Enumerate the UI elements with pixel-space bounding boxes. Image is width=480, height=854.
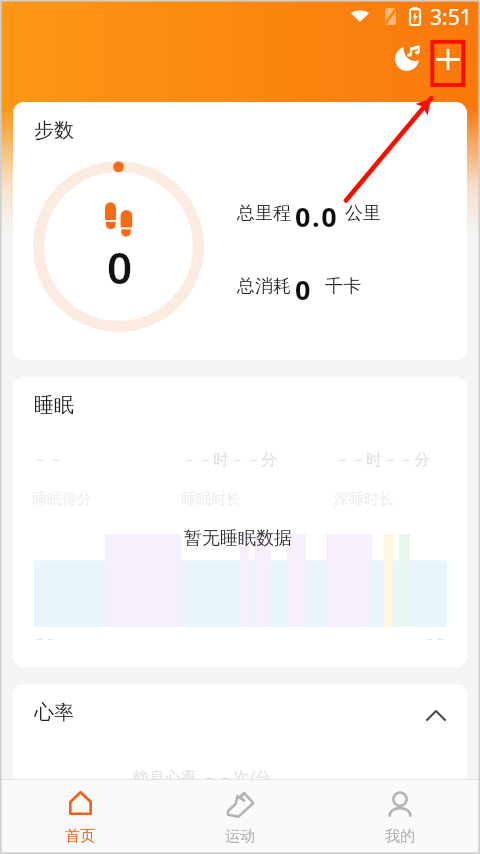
staticText: 我的 bbox=[385, 827, 415, 846]
staticText: 睡眠得分 bbox=[32, 490, 92, 509]
staticText: 深睡时长 bbox=[334, 490, 394, 509]
button[interactable]: 心率 bbox=[13, 684, 467, 804]
staticText: 心率 bbox=[34, 700, 74, 725]
staticText: －－时－－分 bbox=[334, 450, 430, 470]
staticText: 0.0 bbox=[295, 198, 339, 235]
staticText: 总里程 bbox=[237, 202, 291, 225]
button[interactable]: Collapse bbox=[416, 695, 456, 735]
staticText: 首页 bbox=[65, 827, 95, 846]
staticText: －－ bbox=[424, 632, 446, 646]
staticText: 静息心率 －－次/分 bbox=[133, 766, 272, 788]
staticText: 步数 bbox=[34, 118, 74, 143]
staticText: 睡眠时长 bbox=[181, 490, 241, 509]
staticText: 睡眠 bbox=[34, 393, 74, 418]
staticText: －－ bbox=[34, 632, 56, 646]
button[interactable]: Add bbox=[425, 36, 471, 82]
staticText: 暂无睡眠数据 bbox=[184, 527, 292, 550]
staticText: 总消耗 bbox=[237, 275, 291, 298]
staticText: 0 bbox=[295, 271, 313, 308]
staticText: －－ bbox=[32, 450, 64, 470]
staticText: －－时－－分 bbox=[181, 450, 277, 470]
button[interactable]: Sleep music bbox=[386, 36, 432, 82]
button[interactable]: 运动 bbox=[160, 780, 320, 854]
staticText: 3:51 bbox=[430, 3, 472, 32]
staticText: 运动 bbox=[225, 827, 255, 846]
button[interactable]: 步数 bbox=[13, 102, 467, 360]
button[interactable]: 我的 bbox=[320, 780, 480, 854]
button[interactable]: 首页 bbox=[0, 780, 160, 854]
button[interactable]: 睡眠 bbox=[13, 377, 467, 667]
staticText: 千卡 bbox=[325, 275, 361, 298]
staticText: 公里 bbox=[345, 202, 381, 225]
staticText: 0 bbox=[107, 237, 133, 297]
